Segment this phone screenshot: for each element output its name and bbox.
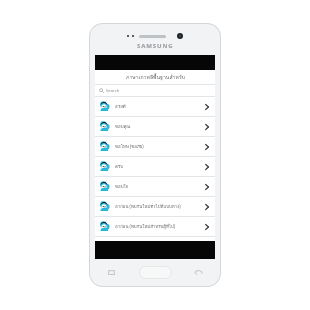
button[interactable]: ลาก่อน (พบกันใหม่สำหรับผู้ที่ไป) xyxy=(95,217,215,236)
staticText: ครับ xyxy=(115,163,203,170)
staticText: ภาษาเกาหลีพื้นฐานสำหรับ xyxy=(126,73,185,81)
button[interactable]: Home xyxy=(139,266,172,279)
staticText: SAMSUNG xyxy=(137,42,174,50)
button[interactable]: ขอบใจ xyxy=(95,177,215,196)
button[interactable]: ขอโทษ (ขอภัย) xyxy=(95,137,215,156)
button[interactable]: Recent apps xyxy=(107,268,116,277)
button[interactable]: Search xyxy=(95,85,215,96)
button[interactable]: Back xyxy=(194,268,203,277)
button[interactable]: ครับ xyxy=(95,157,215,176)
staticText: Search xyxy=(106,88,120,94)
staticText: ขอโทษ (ขอภัย) xyxy=(115,143,203,150)
staticText: ขอบคุณ xyxy=(115,123,203,130)
button[interactable]: ขอบคุณ xyxy=(95,117,215,136)
button[interactable]: สวัสดี xyxy=(95,97,215,116)
staticText: ลาก่อน (พบกันใหม่สำหรับผู้ที่ไป) xyxy=(115,223,203,230)
staticText: สวัสดี xyxy=(115,103,203,110)
staticText: ลาก่อน (พบกันใหม่ทั่วไปที่แบบทาง) xyxy=(115,203,203,210)
button[interactable]: ลาก่อน (พบกันใหม่ทั่วไปที่แบบทาง) xyxy=(95,197,215,216)
staticText: ขอบใจ xyxy=(115,183,203,190)
